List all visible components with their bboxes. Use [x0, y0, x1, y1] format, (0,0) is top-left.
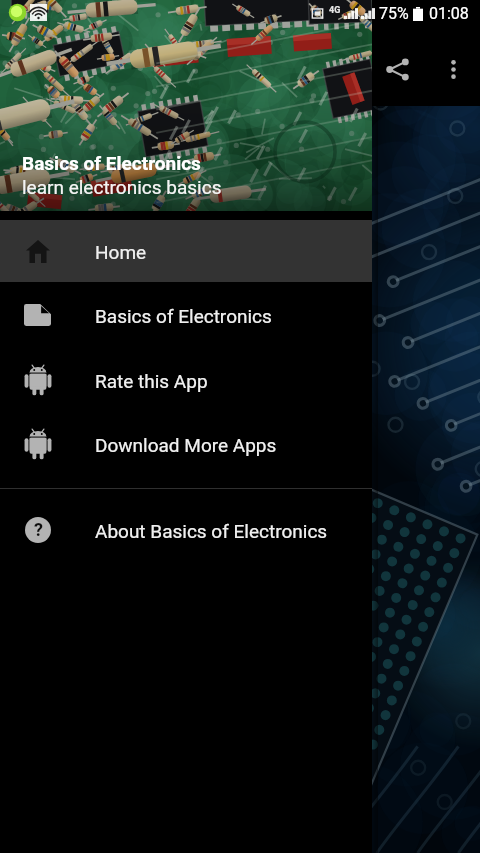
staticText: 4G [329, 5, 341, 16]
button[interactable]: Download More Apps [0, 412, 372, 476]
button[interactable]: Basics of Electronics [0, 282, 372, 348]
button[interactable]: ? [0, 498, 372, 562]
button[interactable]: More options [432, 48, 474, 90]
button[interactable]: Rate this App [0, 348, 372, 412]
staticText: Basics of Electronics [22, 152, 201, 174]
staticText: ? [34, 519, 43, 540]
staticText: Basics of Electronics [95, 305, 272, 327]
staticText: Rate this App [95, 370, 208, 392]
staticText: 01:08 [429, 4, 469, 23]
button[interactable]: Share [376, 48, 418, 90]
staticText: Home [95, 241, 147, 263]
staticText: 75% [379, 4, 409, 23]
staticText: Download More Apps [95, 434, 277, 456]
staticText: About Basics of Electronics [95, 520, 328, 542]
button[interactable]: Home [0, 220, 372, 282]
staticText: learn electronics basics [22, 176, 222, 198]
